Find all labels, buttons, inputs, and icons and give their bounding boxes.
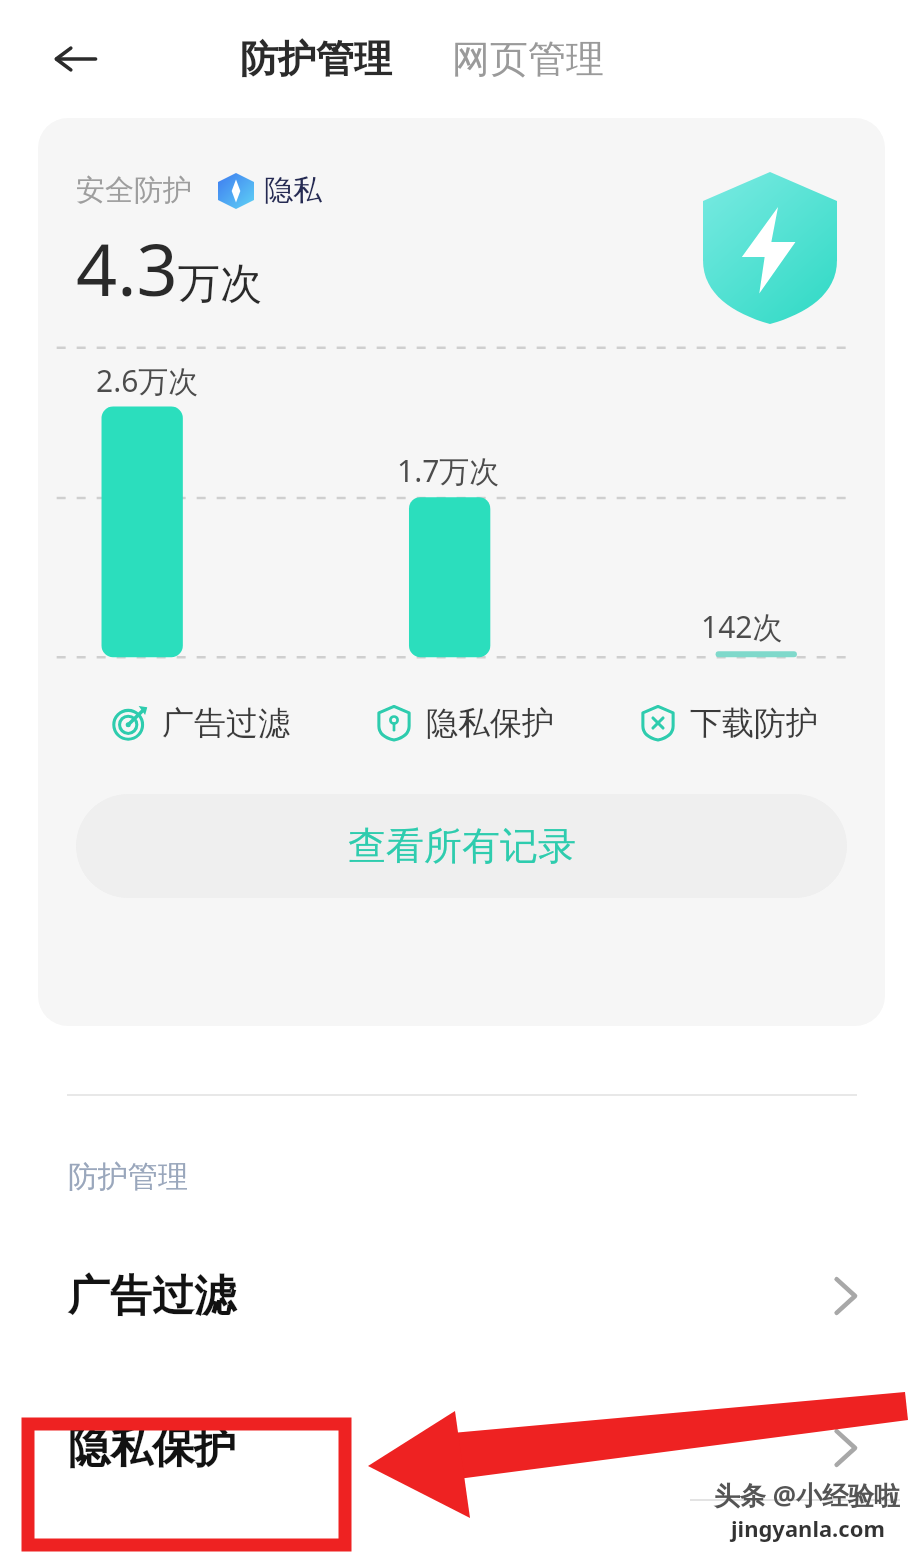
- button[interactable]: Back: [44, 28, 106, 90]
- button[interactable]: 隐私保护: [0, 1400, 923, 1496]
- staticText: jingyanla.com: [731, 1513, 885, 1543]
- staticText: 隐私保护: [68, 1422, 236, 1475]
- button[interactable]: 防护管理: [240, 35, 392, 83]
- button[interactable]: 查看所有记录: [76, 794, 847, 898]
- button[interactable]: 广告过滤: [68, 703, 333, 743]
- staticText: 防护管理: [240, 35, 392, 83]
- button[interactable]: 隐私保护: [333, 703, 597, 743]
- staticText: 下载防护: [690, 703, 818, 743]
- staticText: 1.7万次: [397, 450, 500, 491]
- staticText: 隐私: [264, 172, 322, 209]
- staticText: 查看所有记录: [348, 822, 576, 870]
- staticText: 隐私保护: [426, 703, 554, 743]
- staticText: 142次: [701, 606, 783, 647]
- staticText: 防护管理: [68, 1158, 188, 1196]
- staticText: 网页管理: [452, 35, 604, 83]
- button[interactable]: 网页管理: [452, 35, 604, 83]
- staticText: 4.3: [76, 219, 178, 317]
- staticText: 安全防护: [76, 172, 192, 209]
- staticText: 万次: [178, 258, 262, 311]
- staticText: 头条 @小经验啦: [714, 1477, 901, 1513]
- button[interactable]: 广告过滤: [0, 1248, 923, 1344]
- button[interactable]: 下载防护: [597, 703, 861, 743]
- staticText: 广告过滤: [68, 1270, 236, 1323]
- staticText: 广告过滤: [162, 703, 290, 743]
- staticText: 2.6万次: [96, 360, 199, 401]
